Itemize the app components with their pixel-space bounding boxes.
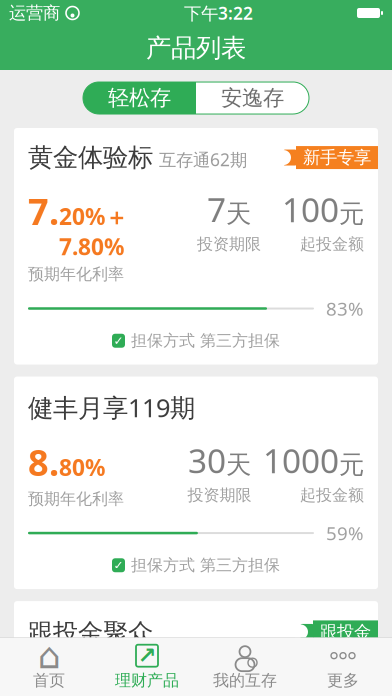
staticText: 健丰月享119期 xyxy=(28,391,195,424)
staticText: 7 xyxy=(207,187,226,231)
staticText: 预期年化利率 xyxy=(28,264,124,284)
button[interactable]: 更多 xyxy=(294,637,392,696)
staticText: 30 xyxy=(188,438,226,482)
staticText: 1000 xyxy=(263,438,339,482)
staticText: 运营商 xyxy=(9,2,60,24)
staticText: 50% xyxy=(80,677,126,696)
staticText: 天 xyxy=(226,449,251,480)
staticText: 20%＋7.80% xyxy=(59,201,128,261)
staticText: 45 xyxy=(188,663,226,696)
staticText: 担保方式 第三方担保 xyxy=(131,331,280,351)
button[interactable]: 黄金体验标 xyxy=(14,128,378,365)
staticText: 担保方式 第三方担保 xyxy=(131,555,280,575)
staticText: 投资期限 xyxy=(197,234,261,254)
staticText: 天 xyxy=(226,198,251,229)
button[interactable]: 安逸存 xyxy=(196,82,309,114)
staticText: 100 xyxy=(282,187,339,231)
staticText: 80% xyxy=(59,452,105,482)
staticText: 预期年化利率 xyxy=(28,489,124,509)
staticText: 我的互存 xyxy=(213,671,277,690)
staticText: 8. xyxy=(28,438,59,486)
button[interactable]: ↗ xyxy=(98,637,196,696)
staticText: 更多 xyxy=(327,671,359,690)
staticText: 1000 xyxy=(263,663,339,696)
staticText: 天 xyxy=(226,674,251,696)
staticText: ✓ xyxy=(113,558,123,572)
staticText: 10. xyxy=(28,663,80,696)
button[interactable]: 轻松存 xyxy=(83,82,196,114)
staticText: ↗ xyxy=(137,643,156,668)
staticText: ✓ xyxy=(113,334,123,347)
staticText: 理财产品 xyxy=(115,671,179,690)
staticText: 起投金额 xyxy=(300,485,364,505)
staticText: 7. xyxy=(28,187,59,235)
staticText: 59% xyxy=(326,521,364,545)
button[interactable]: 跟投金聚众... xyxy=(14,601,378,696)
staticText: 跟投金聚众... xyxy=(28,615,174,649)
staticText: ⌂ xyxy=(37,635,60,676)
staticText: 产品列表 xyxy=(146,32,246,63)
staticText: 元 xyxy=(339,674,364,696)
button[interactable]: 健丰月享119期 xyxy=(14,377,378,589)
staticText: 新手专享 xyxy=(303,147,371,168)
staticText: 投资期限 xyxy=(187,485,251,505)
staticText: 下午3:22 xyxy=(184,1,253,24)
staticText: 跟投金 xyxy=(320,621,371,643)
staticText: 黄金体验标 xyxy=(28,142,153,173)
staticText: 元 xyxy=(339,449,364,480)
staticText: 轻松存 xyxy=(108,85,171,111)
staticText: 首页 xyxy=(33,671,65,690)
staticText: 元 xyxy=(339,198,364,229)
staticText: 已售罄 xyxy=(256,676,331,696)
button[interactable]: 我的互存 xyxy=(196,637,294,696)
staticText: 安逸存 xyxy=(221,85,284,111)
staticText: 起投金额 xyxy=(300,234,364,254)
staticText: 互存通62期 xyxy=(159,148,247,171)
staticText: 83% xyxy=(326,296,364,321)
button[interactable]: ⌂ xyxy=(0,637,98,696)
